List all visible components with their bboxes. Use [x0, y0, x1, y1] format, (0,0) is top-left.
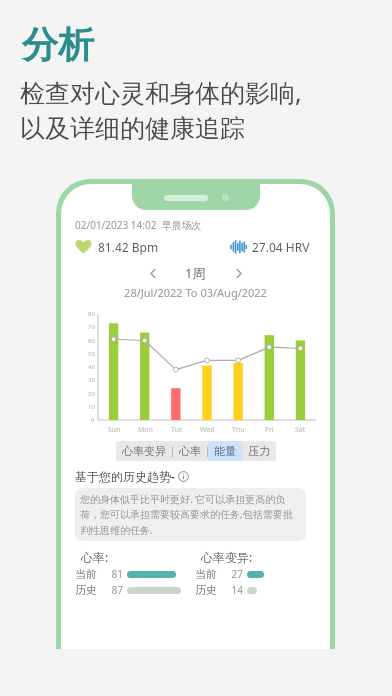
- staticText: 基于您的历史趋势-: [75, 468, 175, 484]
- staticText: 80: [88, 310, 95, 318]
- staticText: 27.04 HRV: [252, 239, 310, 255]
- staticText: 当前: [75, 567, 97, 581]
- staticText: 能量: [214, 444, 236, 458]
- staticText: 50: [88, 350, 95, 358]
- staticText: Sat: [295, 425, 306, 435]
- staticText: 02/01/2023 14:02 早晨场次: [75, 218, 202, 232]
- staticText: 当前: [195, 567, 217, 581]
- other: Info: [178, 471, 189, 482]
- staticText: 分析: [22, 22, 94, 67]
- button[interactable]: 心率变异: [116, 441, 172, 461]
- staticText: 您的身体似乎比平时更好. 它可以承担更高的负荷，您可以承担需要较高要求的任务,包…: [80, 492, 301, 537]
- staticText: 14: [225, 583, 243, 597]
- staticText: 心率:: [81, 549, 109, 565]
- staticText: Thu: [232, 425, 245, 435]
- staticText: 27: [225, 567, 243, 581]
- staticText: 10: [88, 403, 95, 411]
- staticText: 40: [88, 363, 95, 371]
- staticText: 压力: [248, 444, 270, 458]
- staticText: Fri: [265, 425, 274, 435]
- staticText: 20: [88, 390, 95, 398]
- staticText: 28/Jul/2022 To 03/Aug/2022: [75, 285, 316, 300]
- staticText: 心率变异: [122, 444, 166, 458]
- staticText: 1周: [185, 264, 206, 282]
- button[interactable]: 压力: [242, 441, 276, 461]
- staticText: 心率: [179, 444, 201, 458]
- staticText: 历史: [195, 583, 217, 597]
- button[interactable]: 心率: [173, 441, 207, 461]
- staticText: Tue: [171, 425, 183, 435]
- button[interactable]: 能量: [208, 441, 242, 461]
- staticText: Mon: [138, 425, 153, 435]
- staticText: 历史: [75, 583, 97, 597]
- staticText: 心率变异:: [201, 549, 253, 565]
- staticText: Sun: [108, 425, 121, 435]
- button[interactable]: Next week: [228, 263, 248, 283]
- staticText: 0: [91, 416, 95, 424]
- staticText: 70: [88, 323, 95, 331]
- button[interactable]: Previous week: [143, 263, 163, 283]
- staticText: 81: [105, 567, 123, 581]
- staticText: 检查对心灵和身体的影响, 以及详细的健康追踪: [20, 75, 302, 145]
- staticText: 60: [88, 337, 95, 345]
- staticText: 30: [88, 376, 95, 384]
- staticText: Wed: [200, 425, 215, 435]
- staticText: 87: [105, 583, 123, 597]
- staticText: 81.42 Bpm: [98, 239, 159, 255]
